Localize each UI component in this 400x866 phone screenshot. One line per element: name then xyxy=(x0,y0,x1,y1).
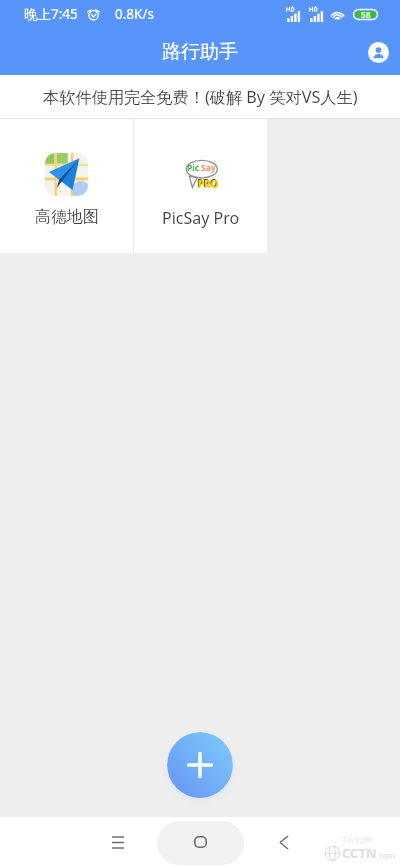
staticText: 58 xyxy=(361,9,371,20)
staticText: Pic xyxy=(187,162,200,174)
staticText: PRO xyxy=(197,176,218,190)
button[interactable]: Recents xyxy=(94,818,142,866)
staticText: 晚上7:45 xyxy=(24,5,78,23)
staticText: CCTN xyxy=(342,844,377,862)
staticText: 手机资源网 xyxy=(342,836,372,844)
button[interactable]: Pic xyxy=(134,119,267,253)
staticText: 高德地图 xyxy=(35,207,99,227)
staticText: 本软件使用完全免费！(破解 By 笑对VS人生) xyxy=(43,86,358,108)
button[interactable]: Account xyxy=(357,31,399,73)
staticText: 0.8K/s xyxy=(115,5,154,23)
button[interactable]: Home xyxy=(176,818,224,866)
staticText: 路行助手 xyxy=(162,40,238,64)
button[interactable]: Add xyxy=(167,732,233,798)
staticText: PicSay Pro xyxy=(162,207,240,229)
staticText: PRO xyxy=(198,177,219,191)
button[interactable]: 高德地图 xyxy=(0,119,133,253)
button[interactable]: Back xyxy=(260,818,308,866)
staticText: Say xyxy=(201,162,216,174)
staticText: .com xyxy=(377,850,396,861)
